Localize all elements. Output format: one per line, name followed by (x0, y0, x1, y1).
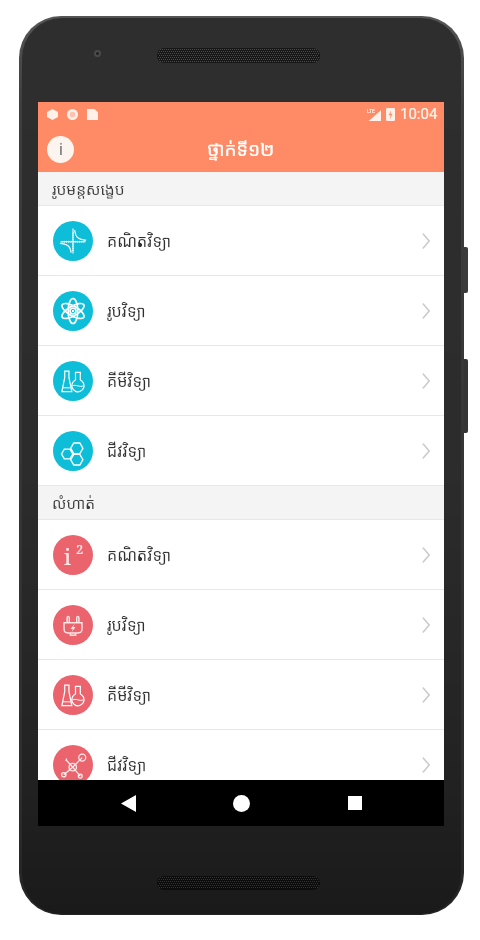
staticText: រូបវិទ្យា (107, 614, 422, 636)
button[interactable]: i (38, 520, 444, 589)
button[interactable]: ជីវវិទ្យា (38, 730, 444, 799)
button[interactable]: Home (217, 780, 265, 826)
button[interactable]: គីមីវិទ្យា (38, 660, 444, 729)
staticText: ជីវវិទ្យា (107, 440, 422, 462)
button[interactable]: ជីវវិទ្យា (38, 416, 444, 485)
button[interactable]: រូបវិទ្យា (38, 590, 444, 659)
button[interactable]: Back (104, 780, 152, 826)
staticText: ជីវវិទ្យា (107, 754, 422, 776)
staticText: គីមីវិទ្យា (107, 684, 422, 706)
staticText: រូបវិទ្យា (107, 300, 422, 322)
staticText: គណិតវិទ្យា (107, 230, 422, 252)
staticText: 2 (76, 540, 84, 558)
staticText: រូបមន្តសង្ខេប (52, 178, 125, 199)
staticText: ថ្នាក់ទី១២ (207, 136, 275, 162)
staticText: i (64, 541, 72, 567)
button[interactable]: Recent apps (331, 780, 379, 826)
staticText: 10:04 (400, 105, 438, 123)
button[interactable]: គីមីវិទ្យា (38, 346, 444, 415)
staticText: គីមីវិទ្យា (107, 370, 422, 392)
staticText: លំហាត់ (52, 492, 96, 513)
staticText: LTE (367, 108, 375, 114)
staticText: i (59, 140, 63, 159)
button[interactable]: រូបវិទ្យា (38, 276, 444, 345)
button[interactable]: Information (47, 136, 74, 163)
button[interactable]: គណិតវិទ្យា (38, 206, 444, 275)
staticText: គណិតវិទ្យា (107, 544, 422, 566)
